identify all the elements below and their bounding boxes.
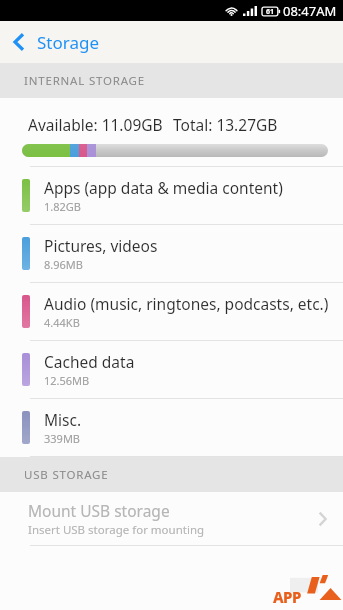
button[interactable]: Mount USB storage [0, 492, 343, 546]
staticText: 08:47AM [283, 2, 337, 20]
staticText: 4.44KB [44, 315, 80, 330]
other: Back [14, 33, 24, 51]
button[interactable]: Apps (app data & media content) [0, 167, 343, 225]
staticText: Pictures, videos [44, 235, 158, 256]
staticText: 1.82GB [44, 199, 81, 214]
other: Mount USB storage [318, 511, 327, 527]
staticText: Misc. [44, 409, 82, 430]
staticText: Total: 13.27GB [173, 114, 278, 135]
staticText: Audio (music, ringtones, podcasts, etc.) [44, 293, 329, 314]
staticText: 12.56MB [44, 373, 90, 388]
staticText: Storage [37, 31, 100, 54]
button[interactable]: Pictures, videos [0, 225, 343, 283]
staticText: Mount USB storage [28, 500, 170, 521]
staticText: Apps (app data & media content) [44, 177, 283, 198]
button[interactable]: Audio (music, ringtones, podcasts, etc.) [0, 283, 343, 341]
button[interactable]: Cached data [0, 341, 343, 399]
staticText: APP [273, 587, 301, 607]
staticText: 339MB [44, 431, 81, 446]
button[interactable]: Misc. [0, 399, 343, 457]
staticText: Available: 11.09GB [28, 114, 163, 135]
staticText: Insert USB storage for mounting [28, 522, 205, 538]
staticText: 61 [266, 7, 275, 17]
button[interactable]: Back [0, 21, 343, 63]
staticText: INTERNAL STORAGE [24, 73, 145, 89]
staticText: USB STORAGE [24, 467, 109, 483]
staticText: Cached data [44, 351, 135, 372]
staticText: 8.96MB [44, 257, 83, 272]
